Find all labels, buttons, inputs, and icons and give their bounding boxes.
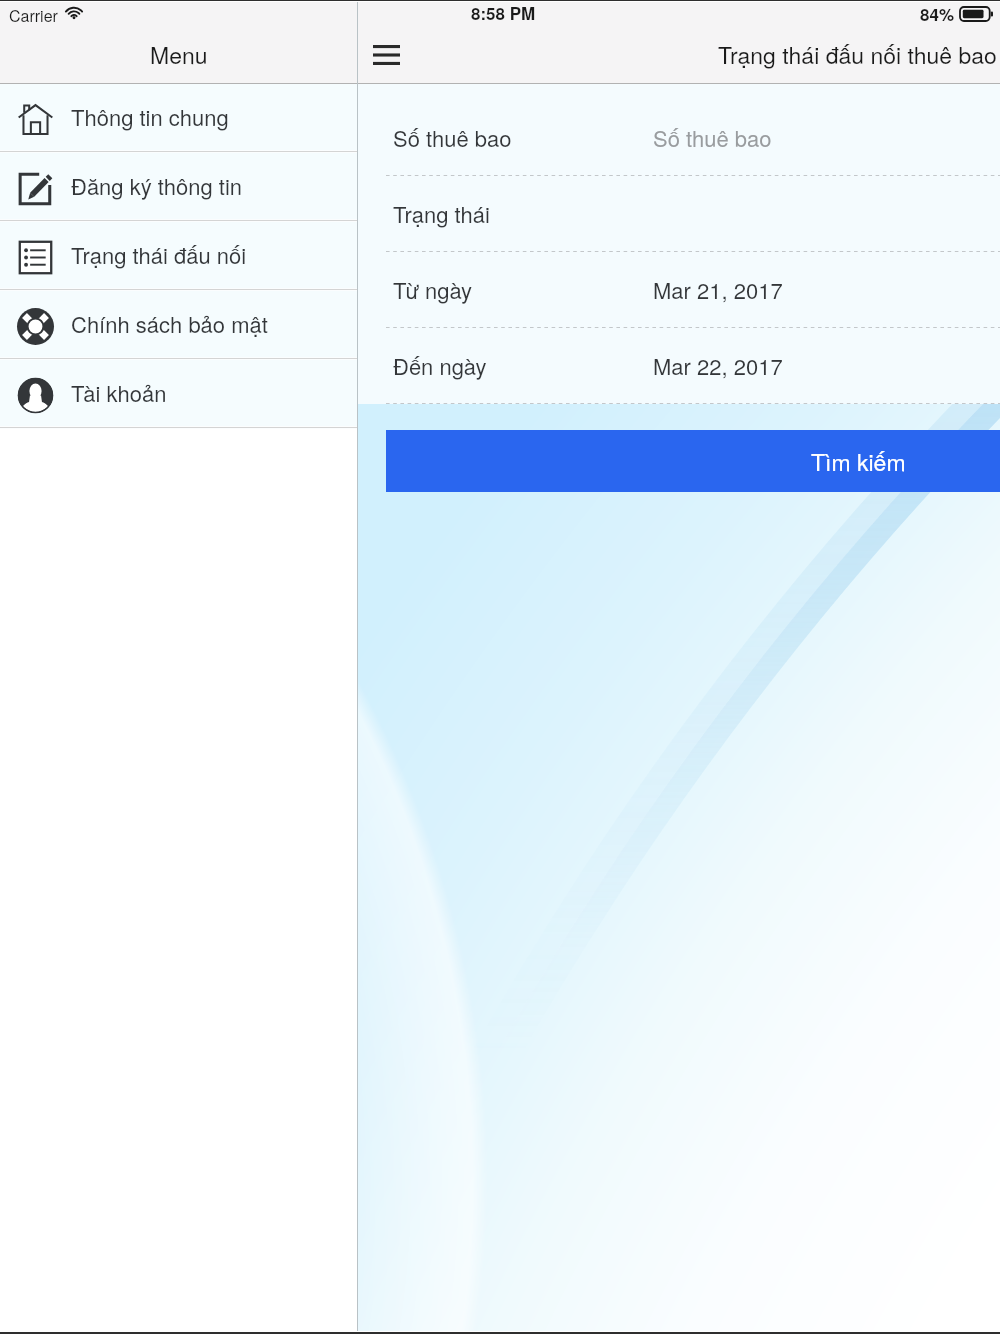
staticText: Số thuê bao [393,122,512,154]
button[interactable]: Trạng thái [358,176,1000,251]
staticText: Trạng thái [393,198,490,230]
button[interactable]: Open navigation menu [358,27,414,83]
staticText: Tài khoản [71,377,167,409]
button[interactable]: Đến ngày [358,328,1000,403]
staticText: Tìm kiếm [811,445,906,478]
staticText: Chính sách bảo mật [71,308,268,340]
button[interactable]: Thông tin chung [0,84,357,150]
button[interactable]: Tìm kiếm [386,430,1000,492]
button[interactable]: Tài khoản [0,360,357,426]
button[interactable]: Trạng thái đấu nối [0,222,357,288]
staticText: 8:58 PM [471,1,536,25]
button[interactable]: Từ ngày [358,252,1000,327]
staticText: Trạng thái đấu nối [71,239,247,271]
button[interactable]: Chính sách bảo mật [0,291,357,357]
staticText: Mar 22, 2017 [653,350,783,382]
staticText: Trạng thái đấu nối thuê bao [718,38,997,71]
staticText: Đến ngày [393,350,487,382]
staticText: Carrier [9,4,58,27]
staticText: Đăng ký thông tin [71,170,243,202]
button[interactable]: Số thuê bao [358,100,1000,175]
staticText: Thông tin chung [71,101,229,133]
button[interactable]: Đăng ký thông tin [0,153,357,219]
staticText: 84% [920,2,955,26]
staticText: Mar 21, 2017 [653,274,783,306]
staticText: Menu [150,38,208,71]
staticText: Từ ngày [393,274,473,306]
staticText: Số thuê bao [653,122,772,154]
